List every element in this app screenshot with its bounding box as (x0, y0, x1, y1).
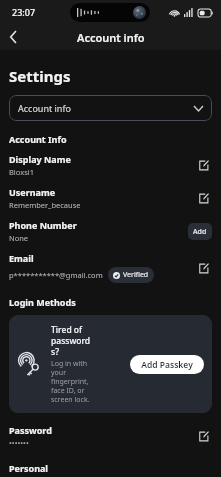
staticText: Login Methods (9, 296, 76, 308)
button[interactable]: Edit (194, 189, 212, 207)
button[interactable]: Edit (194, 427, 212, 445)
staticText: ••••••• (9, 438, 29, 448)
button[interactable]: Add Passkey (130, 355, 204, 374)
button[interactable]: Account info (9, 95, 212, 121)
staticText: Bloxsi1 (9, 167, 34, 177)
button[interactable]: Username (9, 186, 212, 210)
staticText: Account info (77, 30, 145, 45)
button[interactable]: Display Name (9, 153, 212, 177)
button[interactable]: Edit (194, 156, 212, 174)
staticText: Remember_because (9, 200, 81, 210)
staticText: Add (193, 227, 207, 237)
button[interactable]: Tired of passwords? (9, 315, 212, 413)
staticText: p***********@gmail.com (9, 270, 103, 280)
staticText: Personal (9, 462, 49, 474)
button[interactable]: Add (188, 223, 212, 240)
staticText: Add Passkey (141, 359, 193, 371)
button[interactable]: Back (0, 24, 26, 50)
staticText: Phone Number (9, 219, 77, 231)
staticText: Tired of passwords? (51, 324, 93, 357)
staticText: Account info (18, 102, 71, 114)
staticText: None (9, 233, 29, 243)
staticText: Account Info (9, 133, 67, 145)
staticText: Display Name (9, 153, 71, 165)
staticText: Settings (9, 66, 71, 86)
button[interactable]: Email (9, 252, 212, 283)
staticText: Password (9, 424, 52, 436)
staticText: Verified (123, 270, 149, 280)
staticText: Username (9, 186, 56, 198)
button[interactable]: Edit (194, 259, 212, 277)
button[interactable]: Phone Number (9, 219, 212, 243)
staticText: Email (9, 252, 34, 264)
staticText: Log in with your fingerprint, face ID, o… (51, 359, 93, 404)
staticText: 23:07 (12, 6, 36, 18)
button[interactable]: Password (9, 424, 212, 448)
